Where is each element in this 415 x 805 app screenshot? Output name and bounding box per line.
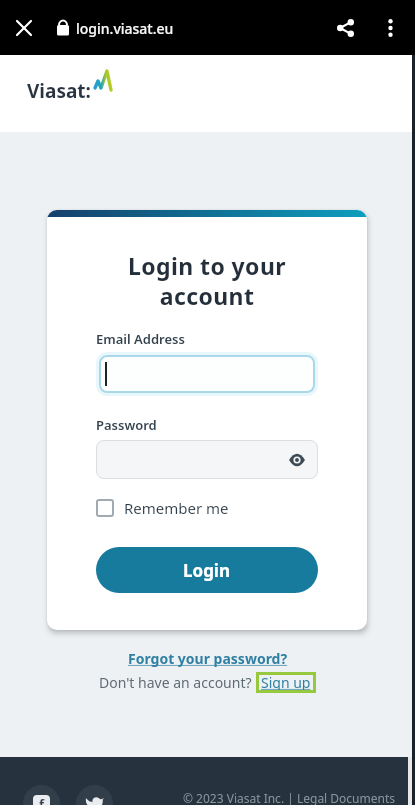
button[interactable] bbox=[96, 440, 318, 479]
button[interactable] bbox=[8, 12, 40, 44]
button[interactable]: login.viasat.eu bbox=[76, 19, 174, 38]
button[interactable]: Remember me bbox=[96, 498, 229, 518]
button[interactable] bbox=[329, 12, 361, 44]
staticText: Login to your account bbox=[47, 250, 367, 311]
staticText: Password bbox=[96, 416, 157, 432]
staticText: f bbox=[39, 795, 45, 805]
staticText: Email Address bbox=[96, 330, 185, 346]
button[interactable]: Login bbox=[96, 547, 318, 593]
button[interactable] bbox=[374, 12, 406, 44]
staticText: © 2023 Viasat Inc. | Legal Documents bbox=[183, 790, 396, 805]
button[interactable] bbox=[76, 785, 113, 805]
button[interactable]: Sign up bbox=[261, 673, 311, 692]
staticText: Don't have an account? bbox=[99, 673, 256, 692]
button[interactable] bbox=[99, 355, 315, 393]
staticText: Viasat: bbox=[27, 78, 91, 104]
staticText: Login bbox=[183, 559, 231, 582]
staticText: Remember me bbox=[124, 498, 229, 518]
button[interactable]: f bbox=[23, 785, 60, 805]
button[interactable]: Forgot your password? bbox=[128, 649, 288, 668]
staticText: Sign up bbox=[261, 673, 311, 692]
